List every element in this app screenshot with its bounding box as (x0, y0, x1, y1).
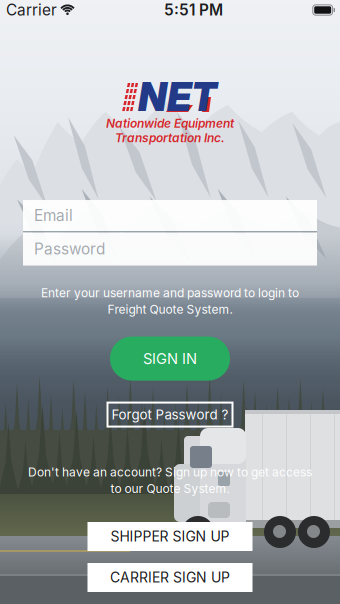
staticText: SHIPPER SIGN UP (110, 528, 229, 545)
button[interactable]: Email (23, 200, 317, 231)
staticText: CARRIER SIGN UP (110, 569, 230, 586)
staticText: Carrier (6, 1, 57, 19)
staticText: Nationwide Equipment (106, 116, 234, 130)
staticText: Transportation Inc. (115, 130, 225, 145)
staticText: Don't have an account? Sign up now to ge… (28, 465, 312, 479)
button[interactable]: Password (23, 232, 317, 265)
button[interactable]: SIGN IN (110, 337, 230, 381)
staticText: NET (138, 74, 217, 120)
button[interactable]: CARRIER SIGN UP (87, 563, 252, 592)
staticText: to our Quote System. (110, 481, 229, 496)
staticText: Email (34, 206, 73, 225)
button[interactable]: SHIPPER SIGN UP (87, 522, 252, 551)
staticText: 5:51 PM (164, 1, 223, 19)
staticText: Password (34, 240, 105, 258)
staticText: Forgot Password ? (111, 406, 228, 423)
button[interactable]: Forgot Password ? (107, 403, 232, 427)
staticText: Enter your username and password to logi… (41, 285, 299, 300)
staticText: Freight Quote System. (107, 302, 232, 317)
staticText: SIGN IN (143, 350, 197, 367)
